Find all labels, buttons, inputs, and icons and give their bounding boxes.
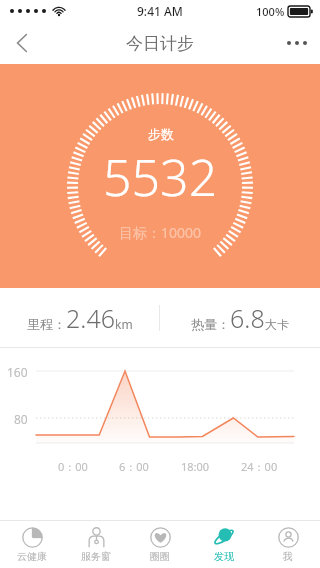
staticText: 160 xyxy=(7,364,28,380)
staticText: 热量： xyxy=(191,316,230,332)
button[interactable]: 圈圈 xyxy=(128,521,192,568)
button[interactable]: Back xyxy=(0,22,44,64)
staticText: 9:41 AM xyxy=(137,3,183,19)
staticText: 6：00 xyxy=(119,459,149,474)
staticText: 2.46 xyxy=(66,301,115,335)
staticText: 步数 xyxy=(148,126,174,142)
staticText: 100% xyxy=(256,4,285,19)
staticText: 今日计步 xyxy=(126,33,194,54)
button[interactable]: More options xyxy=(274,22,320,64)
staticText: 24：00 xyxy=(241,459,278,474)
staticText: 目标：10000 xyxy=(119,223,202,242)
button[interactable]: 云健康 xyxy=(0,521,64,568)
staticText: 0：00 xyxy=(58,459,88,474)
staticText: 我 xyxy=(283,550,293,563)
staticText: km xyxy=(115,316,133,332)
staticText: 18:00 xyxy=(181,459,210,474)
button[interactable]: 发现 xyxy=(192,521,256,568)
button[interactable]: 服务窗 xyxy=(64,521,128,568)
staticText: 云健康 xyxy=(17,550,47,563)
staticText: 80 xyxy=(14,411,28,427)
staticText: 6.8 xyxy=(230,301,265,335)
button[interactable]: 我 xyxy=(256,521,320,568)
staticText: 大卡 xyxy=(265,317,289,332)
staticText: 服务窗 xyxy=(81,550,111,563)
staticText: 发现 xyxy=(214,550,234,563)
staticText: 里程： xyxy=(27,316,66,332)
staticText: 圈圈 xyxy=(150,550,170,563)
staticText: 5532 xyxy=(103,143,218,211)
